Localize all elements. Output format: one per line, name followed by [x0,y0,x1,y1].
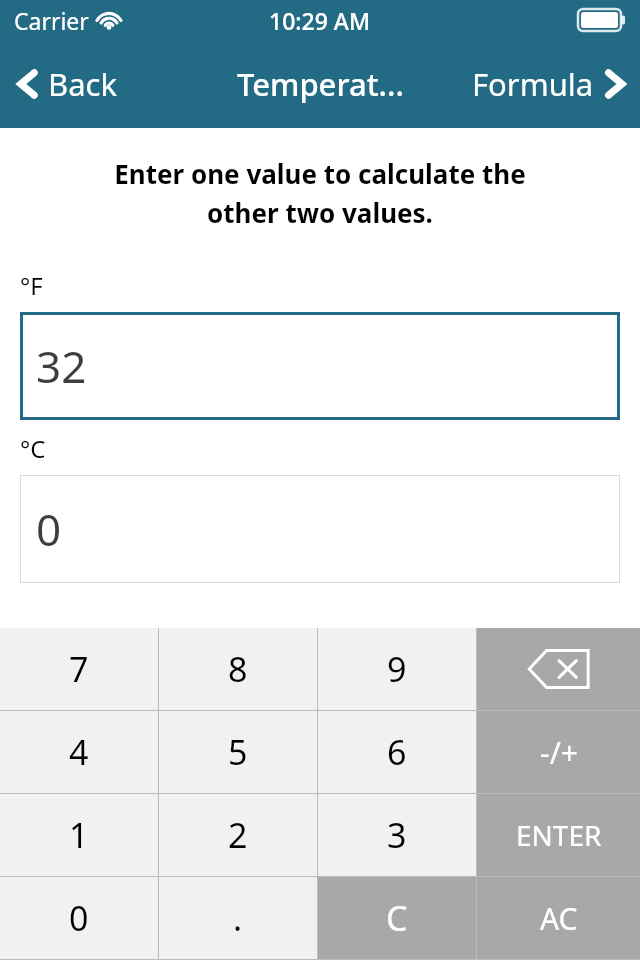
staticText: Back [48,63,117,105]
button[interactable]: 5 [159,711,317,793]
button[interactable]: 7 [0,628,158,710]
staticText: C [386,895,408,941]
button[interactable]: AC [477,877,640,959]
button[interactable]: 6 [318,711,476,793]
staticText: Formula [472,63,594,105]
staticText: Temperat... [237,63,404,105]
button[interactable]: 0 [20,475,620,583]
staticText: 0 [36,499,62,559]
button[interactable]: 1 [0,794,158,876]
staticText: 5 [228,729,248,775]
staticText: 3 [387,812,407,858]
button[interactable]: 0 [0,877,158,959]
staticText: 0 [69,895,89,941]
staticText: 10:29 AM [269,5,371,36]
staticText: 2 [228,812,248,858]
button[interactable]: C [318,877,476,959]
button[interactable]: . [159,877,317,959]
button[interactable]: 4 [0,711,158,793]
staticText: . [233,895,243,941]
staticText: °C [20,432,46,465]
button[interactable]: Back [14,63,117,105]
staticText: ENTER [516,816,602,854]
button[interactable]: 32 [20,312,620,420]
staticText: -/+ [540,732,578,773]
staticText: 1 [69,812,89,858]
button[interactable]: 9 [318,628,476,710]
button[interactable]: ENTER [477,794,640,876]
staticText: 7 [69,646,89,692]
staticText: 32 [36,336,87,396]
staticText: 4 [69,729,89,775]
staticText: 9 [387,646,407,692]
button[interactable]: Formula [472,63,628,105]
button[interactable]: 2 [159,794,317,876]
button[interactable]: 3 [318,794,476,876]
staticText: 8 [228,646,248,692]
staticText: °F [20,269,43,302]
staticText: Enter one value to calculate the other t… [16,156,624,231]
staticText: Carrier [14,5,89,36]
button[interactable]: Delete [477,628,640,710]
staticText: 6 [387,729,407,775]
button[interactable]: -/+ [477,711,640,793]
staticText: AC [540,898,578,939]
button[interactable]: 8 [159,628,317,710]
